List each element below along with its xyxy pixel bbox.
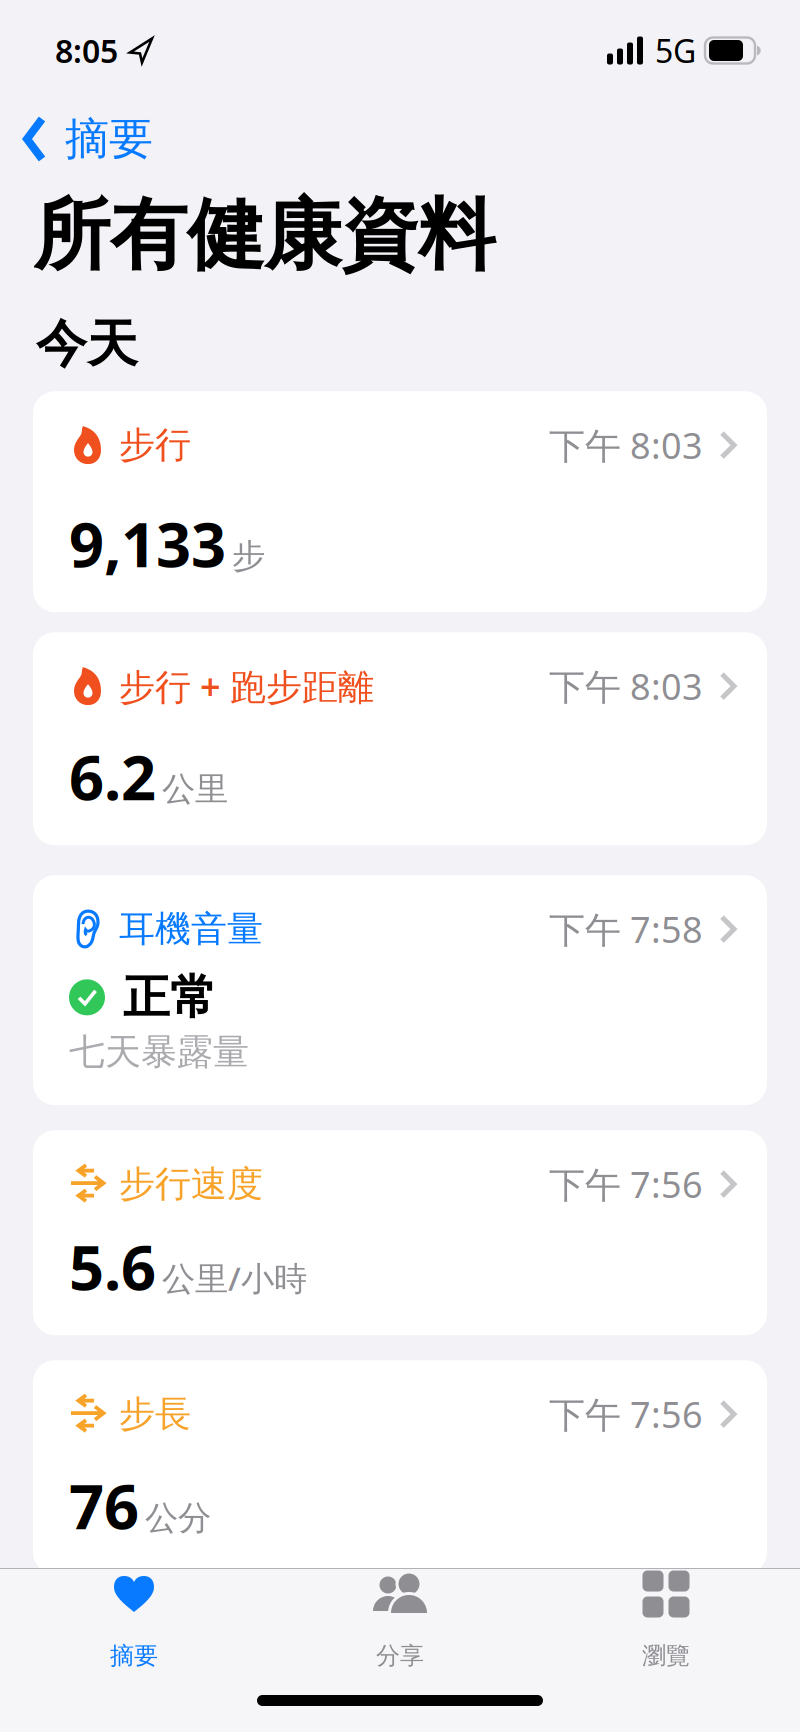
staticText: 七天暴露量 xyxy=(69,1030,249,1074)
staticText: 步行 xyxy=(119,423,191,467)
staticText: 耳機音量 xyxy=(119,907,263,951)
staticText: 步行速度 xyxy=(119,1162,263,1206)
button[interactable]: 步長 xyxy=(33,1360,767,1574)
staticText: 摘要 xyxy=(65,112,153,166)
staticText: 步行 + 跑步距離 xyxy=(119,662,374,710)
staticText: 下午 8:03 xyxy=(549,421,703,469)
button[interactable]: 步行速度 xyxy=(33,1130,767,1335)
staticText: 公里/小時 xyxy=(162,1256,307,1300)
staticText: 所有健康資料 xyxy=(33,188,495,283)
staticText: 步長 xyxy=(119,1392,191,1436)
staticText: 76 xyxy=(69,1465,139,1546)
staticText: 下午 7:56 xyxy=(549,1160,703,1208)
button[interactable]: 摘要 xyxy=(1,1573,267,1670)
staticText: 公里 xyxy=(162,769,228,810)
staticText: 分享 xyxy=(376,1641,424,1670)
staticText: 9,133 xyxy=(69,503,226,584)
staticText: 5G xyxy=(655,29,696,72)
button[interactable]: 瀏覽 xyxy=(533,1573,799,1670)
button[interactable]: 步行 xyxy=(33,391,767,612)
button[interactable]: 耳機音量 xyxy=(33,875,767,1105)
staticText: 下午 7:58 xyxy=(549,905,703,953)
staticText: 今天 xyxy=(36,313,138,375)
button[interactable]: 步行 + 跑步距離 xyxy=(33,632,767,845)
staticText: 正常 xyxy=(123,969,217,1026)
staticText: 公分 xyxy=(145,1498,211,1539)
button[interactable]: 分享 xyxy=(267,1573,533,1670)
staticText: 步 xyxy=(232,536,265,577)
staticText: 8:05 xyxy=(55,29,118,72)
staticText: 5.6 xyxy=(69,1226,156,1307)
staticText: 下午 8:03 xyxy=(549,662,703,710)
staticText: 摘要 xyxy=(110,1641,158,1670)
staticText: 瀏覽 xyxy=(642,1641,690,1670)
button[interactable]: 摘要 xyxy=(0,112,153,166)
staticText: 6.2 xyxy=(69,736,156,817)
staticText: 下午 7:56 xyxy=(549,1390,703,1438)
